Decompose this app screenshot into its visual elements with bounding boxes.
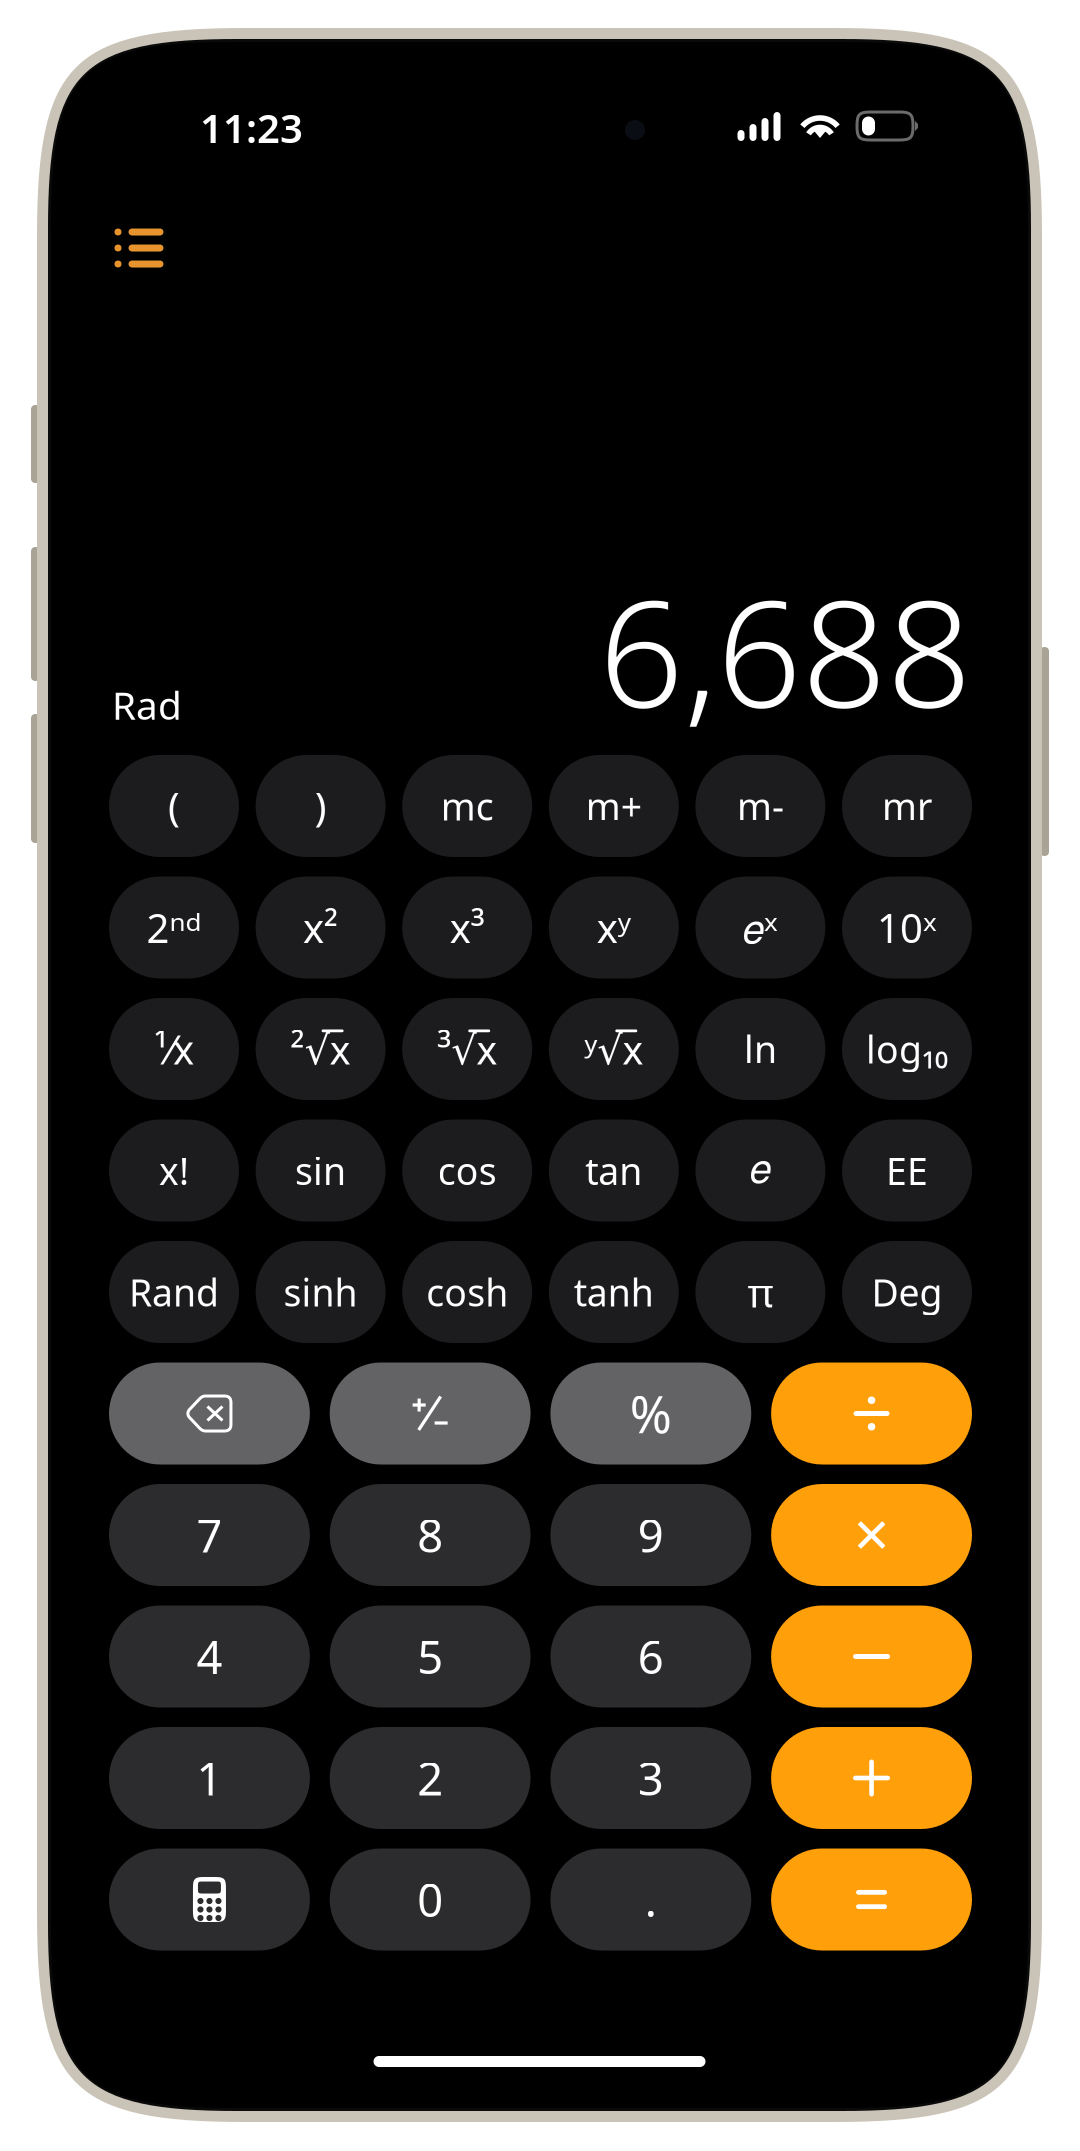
button[interactable]: xʸ — [549, 876, 679, 978]
staticText: cosh — [426, 1267, 508, 1317]
button[interactable]: sinh — [256, 1241, 386, 1343]
staticText: . — [645, 1869, 657, 1930]
button[interactable]: % — [550, 1362, 751, 1464]
button[interactable]: 8 — [330, 1484, 531, 1586]
staticText: 3 — [638, 1748, 664, 1808]
staticText: 4 — [196, 1626, 222, 1687]
button[interactable] — [771, 1484, 972, 1586]
staticText: EE — [886, 1146, 928, 1195]
staticText: Rand — [129, 1267, 219, 1317]
button[interactable]: cosh — [402, 1241, 532, 1343]
staticText: x² — [303, 901, 338, 954]
staticText: ¹⁄x — [154, 1022, 194, 1075]
button[interactable]: π — [695, 1241, 825, 1343]
staticText: x! — [159, 1146, 189, 1195]
staticText: Deg — [871, 1267, 942, 1317]
button[interactable]: m- — [695, 755, 825, 857]
staticText: xʸ — [597, 901, 631, 954]
staticText: ³√x — [437, 1022, 497, 1075]
button[interactable]: m+ — [549, 755, 679, 857]
button[interactable]: ²√x — [256, 998, 386, 1100]
button[interactable] — [109, 1362, 310, 1464]
button[interactable]: mc — [402, 755, 532, 857]
staticText: m+ — [586, 781, 642, 831]
staticText: 7 — [196, 1505, 222, 1565]
staticText: ( — [168, 779, 180, 832]
button[interactable]: EE — [842, 1119, 972, 1221]
staticText: π — [747, 1265, 773, 1318]
button[interactable]: cos — [402, 1119, 532, 1221]
button[interactable]: 5 — [330, 1605, 531, 1707]
button[interactable]: mr — [842, 755, 972, 857]
button[interactable]: 3 — [550, 1727, 751, 1829]
staticText: ) — [315, 779, 327, 832]
button[interactable]: 10ˣ — [842, 876, 972, 978]
button[interactable]: History — [114, 228, 164, 268]
button[interactable]: ¹⁄x — [109, 998, 239, 1100]
button[interactable]: Rand — [109, 1241, 239, 1343]
staticText: 𝑒 — [750, 1151, 771, 1190]
button[interactable]: sin — [256, 1119, 386, 1221]
button[interactable] — [771, 1605, 972, 1707]
staticText: 1 — [196, 1748, 222, 1808]
button[interactable]: x! — [109, 1119, 239, 1221]
button[interactable]: log₁₀ — [842, 998, 972, 1100]
staticText: mc — [441, 781, 494, 831]
staticText: 6 — [638, 1626, 664, 1687]
button[interactable]: x³ — [402, 876, 532, 978]
button[interactable] — [109, 1848, 310, 1950]
button[interactable]: 9 — [550, 1484, 751, 1586]
staticText: 10ˣ — [877, 901, 937, 954]
button[interactable]: x² — [256, 876, 386, 978]
button[interactable]: tan — [549, 1119, 679, 1221]
button[interactable]: Deg — [842, 1241, 972, 1343]
button[interactable]: 1 — [109, 1727, 310, 1829]
staticText: 2ⁿᵈ — [146, 901, 201, 954]
button[interactable]: 0 — [330, 1848, 531, 1950]
staticText: Rad — [112, 679, 182, 730]
staticText: sin — [295, 1146, 346, 1195]
staticText: 0 — [417, 1869, 443, 1930]
staticText: % — [630, 1380, 672, 1447]
button[interactable]: 2 — [330, 1727, 531, 1829]
button[interactable]: 2ⁿᵈ — [109, 876, 239, 978]
button[interactable] — [771, 1848, 972, 1950]
staticText: 6,688 — [599, 552, 972, 748]
staticText: ln — [744, 1024, 777, 1074]
button[interactable] — [330, 1362, 531, 1464]
button[interactable]: 6 — [550, 1605, 751, 1707]
staticText: 2 — [417, 1748, 443, 1808]
staticText: ²√x — [291, 1022, 351, 1075]
staticText: 9 — [638, 1505, 664, 1565]
button[interactable]: 𝑒ˣ — [695, 876, 825, 978]
staticText: 5 — [417, 1626, 443, 1687]
button[interactable]: . — [550, 1848, 751, 1950]
staticText: 8 — [417, 1505, 443, 1565]
button[interactable]: 𝑒 — [695, 1119, 825, 1221]
button[interactable]: 4 — [109, 1605, 310, 1707]
staticText: log₁₀ — [866, 1024, 948, 1074]
button[interactable]: ) — [256, 755, 386, 857]
staticText: cos — [438, 1146, 497, 1195]
staticText: ʸ√x — [584, 1022, 643, 1075]
button[interactable]: ʸ√x — [549, 998, 679, 1100]
staticText: tan — [585, 1146, 642, 1195]
staticText: 𝑒ˣ — [743, 901, 778, 954]
staticText: sinh — [284, 1267, 358, 1317]
staticText: m- — [737, 781, 784, 831]
staticText: mr — [882, 781, 932, 831]
button[interactable] — [771, 1362, 972, 1464]
button[interactable]: tanh — [549, 1241, 679, 1343]
button[interactable] — [771, 1727, 972, 1829]
button[interactable]: 7 — [109, 1484, 310, 1586]
staticText: 11:23 — [200, 101, 303, 154]
button[interactable]: ln — [695, 998, 825, 1100]
button[interactable]: ( — [109, 755, 239, 857]
staticText: tanh — [574, 1267, 654, 1317]
staticText: x³ — [450, 901, 485, 954]
button[interactable]: ³√x — [402, 998, 532, 1100]
